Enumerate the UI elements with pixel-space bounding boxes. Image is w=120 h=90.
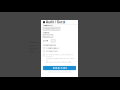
staticText: ✕ [74,21,75,23]
staticText: PayPal account [46,50,57,52]
staticText: updates by email. You may unsubscribe at… [46,58,74,61]
staticText: Payment method [43,44,56,46]
staticText: Full name [43,32,49,34]
button[interactable]: Credit or debit card [41,46,78,49]
staticText: Credit or debit card [46,47,59,49]
button[interactable]: Already have an account? Log in [41,71,78,73]
staticText: Jane Doe [44,35,50,37]
staticText: Audit / Guest [46,20,65,24]
button[interactable]: SUBSCRIBE [43,66,76,70]
staticText: Quantity [43,40,48,42]
button[interactable]: PayPal account [41,49,78,52]
button[interactable]: Close [73,21,76,23]
staticText: name@example.com [44,28,58,29]
staticText: time — see our privacy policy for detail… [46,61,71,63]
staticText: I agree to receive occasional news and p… [46,54,73,57]
staticText: Email address [43,25,53,26]
staticText: SUBSCRIBE [52,66,66,70]
